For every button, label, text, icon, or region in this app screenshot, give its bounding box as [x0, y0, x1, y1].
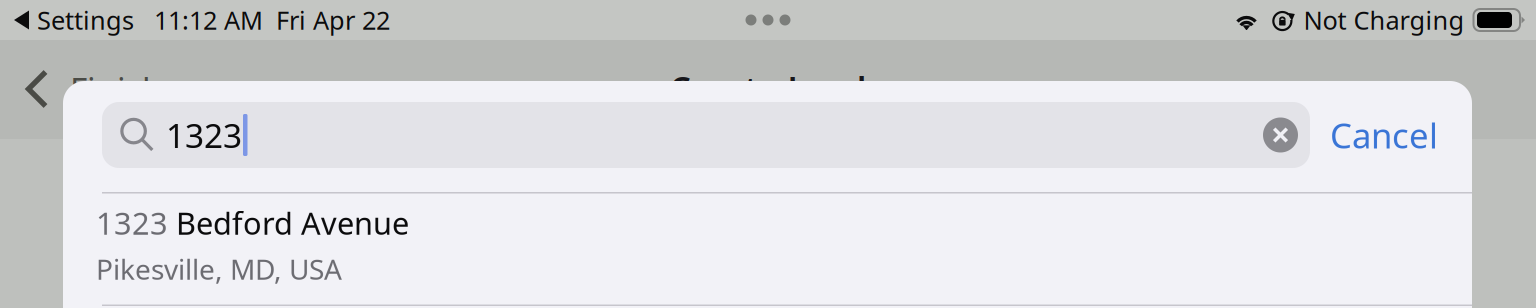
staticText: Cancel: [1330, 112, 1438, 158]
button[interactable]: 1323: [63, 193, 1472, 304]
staticText: Finish: [70, 67, 163, 111]
button[interactable]: Cancel: [1310, 102, 1456, 168]
staticText: Fri Apr 22: [276, 3, 390, 37]
staticText: 1323: [166, 113, 242, 157]
staticText: Bedford Avenue: [176, 202, 409, 243]
button[interactable]: Clear text: [1263, 107, 1310, 162]
button[interactable]: Back: [0, 67, 163, 111]
button[interactable]: Settings: [0, 3, 138, 37]
staticText: Settings: [37, 3, 134, 37]
staticText: Pikesville, MD, USA: [96, 250, 342, 287]
staticText: 1323: [96, 202, 176, 243]
staticText: Create Lead: [669, 67, 866, 111]
staticText: 11:12 AM: [154, 3, 263, 37]
staticText: Not Charging: [1303, 3, 1464, 37]
